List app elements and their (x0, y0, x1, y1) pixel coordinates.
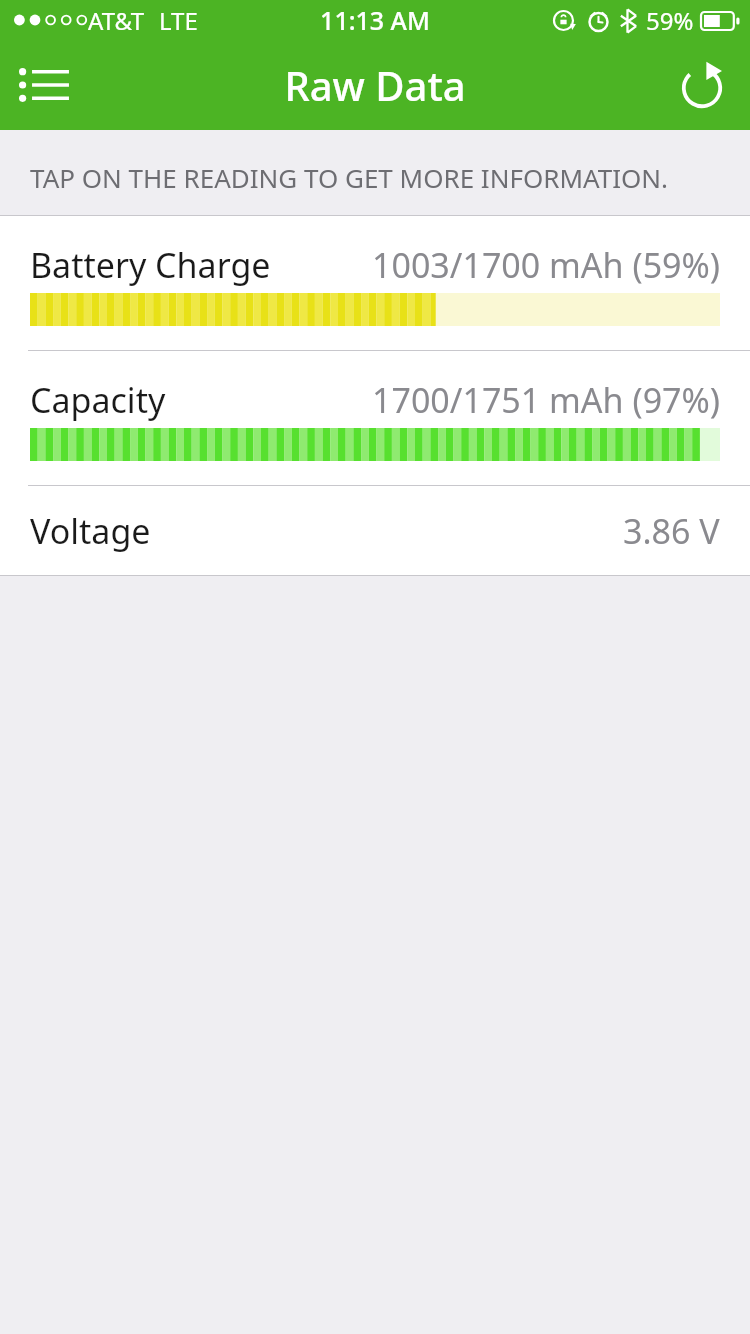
staticText: 11:13 AM (320, 3, 430, 37)
button[interactable]: Capacity (0, 351, 750, 485)
staticText: 3.86 V (623, 508, 720, 554)
staticText: Battery Charge (30, 242, 271, 288)
staticText: AT&T (88, 4, 144, 37)
button[interactable]: Voltage (0, 486, 750, 575)
staticText: Raw Data (284, 58, 466, 112)
staticText: TAP ON THE READING TO GET MORE INFORMATI… (30, 160, 669, 195)
staticText: Capacity (30, 377, 166, 423)
staticText: Voltage (30, 508, 151, 554)
staticText: LTE (159, 4, 198, 37)
staticText: 1700/1751 mAh (97%) (372, 377, 720, 423)
button[interactable]: Menu (4, 45, 84, 125)
staticText: 1003/1700 mAh (59%) (372, 242, 720, 288)
staticText: 59% (646, 4, 694, 37)
button[interactable]: Refresh (662, 45, 742, 125)
button[interactable]: Battery Charge (0, 216, 750, 350)
